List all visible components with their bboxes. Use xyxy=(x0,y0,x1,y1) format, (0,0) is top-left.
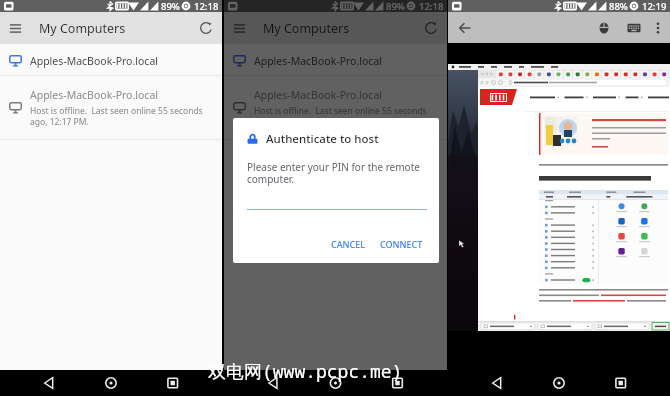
staticText: My Computers xyxy=(39,20,126,37)
button[interactable]: Mouse xyxy=(595,19,613,37)
staticText: Authenticate to host xyxy=(266,131,379,147)
staticText: 12:19 xyxy=(642,0,667,12)
staticText: Please enter your PIN for the remote com… xyxy=(247,160,427,186)
staticText: Host is offline. Last seen online 55 sec… xyxy=(30,105,216,127)
button[interactable]: CONNECT xyxy=(376,234,427,254)
button[interactable]: Keyboard xyxy=(625,19,643,37)
button[interactable]: Refresh xyxy=(196,18,216,38)
button[interactable]: Back xyxy=(456,19,474,37)
staticText: My Computers xyxy=(263,20,350,37)
button[interactable]: Apples-MacBook-Pro.local xyxy=(0,76,222,139)
staticText: 12:18 xyxy=(194,0,219,12)
button[interactable]: Menu xyxy=(5,18,26,39)
staticText: Apples-MacBook-Pro.local xyxy=(254,88,382,102)
button[interactable]: Menu xyxy=(229,18,250,39)
staticText: 89% xyxy=(386,0,405,12)
button[interactable]: Apples-MacBook-Pro.local xyxy=(224,46,447,75)
staticText: CONNECT xyxy=(380,238,423,250)
staticText: Host is offline. Last seen online 55 sec… xyxy=(254,105,441,127)
button[interactable]: Apples-MacBook-Pro.local xyxy=(224,76,447,139)
staticText: 89% xyxy=(161,0,180,12)
button[interactable]: CANCEL xyxy=(327,234,370,254)
button[interactable]: More options xyxy=(651,21,665,35)
staticText: 双电网(www.pcpc.me) xyxy=(208,359,403,384)
button[interactable]: Apples-MacBook-Pro.local xyxy=(0,46,222,75)
button[interactable]: Refresh xyxy=(421,18,441,38)
staticText: Apples-MacBook-Pro.local xyxy=(30,88,158,102)
staticText: Apples-MacBook-Pro.local xyxy=(254,54,382,68)
staticText: Apples-MacBook-Pro.local xyxy=(30,54,158,68)
staticText: 12:18 xyxy=(419,0,444,12)
staticText: CANCEL xyxy=(331,238,366,250)
staticText: 88% xyxy=(609,0,628,12)
